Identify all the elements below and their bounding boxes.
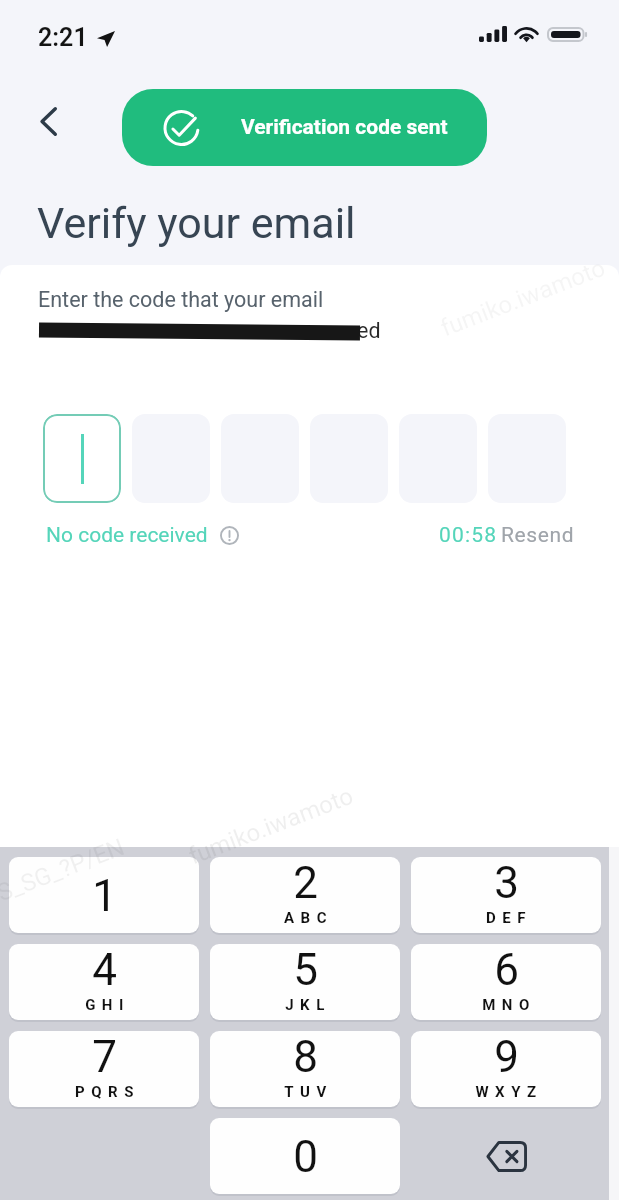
button[interactable]: Code digit 1 (43, 414, 121, 503)
button[interactable]: No code received (46, 523, 239, 548)
staticText: GHI (85, 996, 130, 1014)
staticText: 1 (92, 870, 117, 922)
staticText: 00:58 (439, 523, 498, 548)
staticText: fumiko.iwamoto (185, 782, 357, 870)
button[interactable]: 3 (411, 857, 601, 933)
button[interactable]: 8 (210, 1031, 400, 1107)
staticText: ed (357, 318, 381, 343)
button[interactable]: Resend (501, 523, 575, 548)
staticText: 2:21 (38, 23, 88, 52)
staticText: 9 (494, 1031, 519, 1083)
staticText: fumiko.iwamoto (437, 254, 609, 342)
staticText: Resend (501, 523, 575, 548)
button[interactable]: Verification code sent (122, 89, 487, 166)
button[interactable]: 1 (9, 857, 199, 933)
staticText: 3 (494, 857, 519, 909)
staticText: WXYZ (475, 1083, 543, 1101)
staticText: 7 (92, 1031, 117, 1083)
staticText: JKL (285, 996, 331, 1014)
staticText: 8 (293, 1031, 318, 1083)
button[interactable]: Back (23, 96, 73, 146)
staticText: 5 (293, 944, 318, 996)
staticText: Enter the code that your email (38, 287, 324, 312)
staticText: 6 (494, 944, 519, 996)
button[interactable]: 0 (210, 1118, 400, 1194)
staticText: DEF (486, 909, 532, 927)
button[interactable]: 5 (210, 944, 400, 1020)
staticText: 0 (293, 1131, 318, 1183)
staticText: PQRS (75, 1083, 140, 1101)
button[interactable]: 9 (411, 1031, 601, 1107)
staticText: TUV (284, 1083, 333, 1101)
button[interactable]: 2 (210, 857, 400, 933)
staticText: Verification code sent (241, 115, 448, 140)
button[interactable]: 6 (411, 944, 601, 1020)
staticText: 2 (293, 857, 318, 909)
button[interactable]: 7 (9, 1031, 199, 1107)
staticText: S_SG_?P/EN (0, 833, 128, 907)
button[interactable]: 4 (9, 944, 199, 1020)
staticText: ABC (284, 909, 333, 927)
staticText: Verify your email (37, 198, 356, 248)
staticText: 4 (92, 944, 117, 996)
button[interactable]: Backspace (411, 1118, 601, 1194)
staticText: No code received (46, 523, 208, 548)
staticText: MNO (482, 996, 536, 1014)
